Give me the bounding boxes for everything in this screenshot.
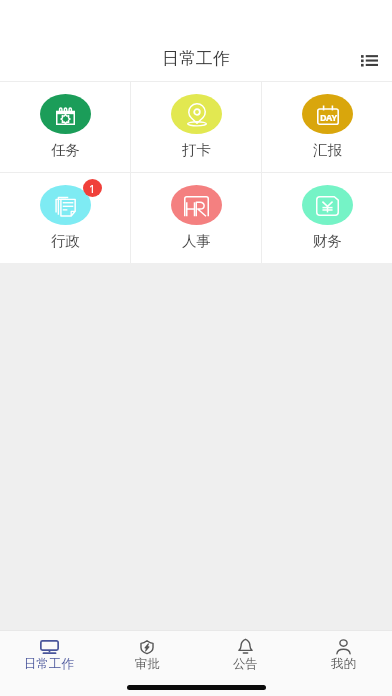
button[interactable]: Menu xyxy=(354,44,384,74)
button[interactable]: 人事 xyxy=(131,173,261,263)
staticText: 行政 xyxy=(51,232,80,250)
staticText: 财务 xyxy=(313,232,342,250)
staticText: 日常工作 xyxy=(162,48,230,69)
button[interactable]: 日常工作 xyxy=(0,638,98,678)
staticText: 人事 xyxy=(182,232,211,250)
button[interactable]: 我的 xyxy=(294,638,392,678)
staticText: 1 xyxy=(89,181,96,196)
button[interactable]: DAY xyxy=(262,82,392,172)
button[interactable]: 1 xyxy=(0,173,130,263)
button[interactable]: 审批 xyxy=(98,638,196,678)
staticText: 汇报 xyxy=(313,141,342,159)
button[interactable]: 任务 xyxy=(0,82,130,172)
button[interactable]: 打卡 xyxy=(131,82,261,172)
staticText: 公告 xyxy=(233,656,258,672)
staticText: 任务 xyxy=(51,141,80,159)
staticText: 我的 xyxy=(331,656,356,672)
staticText: DAY xyxy=(320,111,337,123)
staticText: 审批 xyxy=(135,656,160,672)
button[interactable]: 公告 xyxy=(196,638,294,678)
button[interactable]: 财务 xyxy=(262,173,392,263)
staticText: 打卡 xyxy=(182,141,211,159)
staticText: 日常工作 xyxy=(24,656,74,672)
